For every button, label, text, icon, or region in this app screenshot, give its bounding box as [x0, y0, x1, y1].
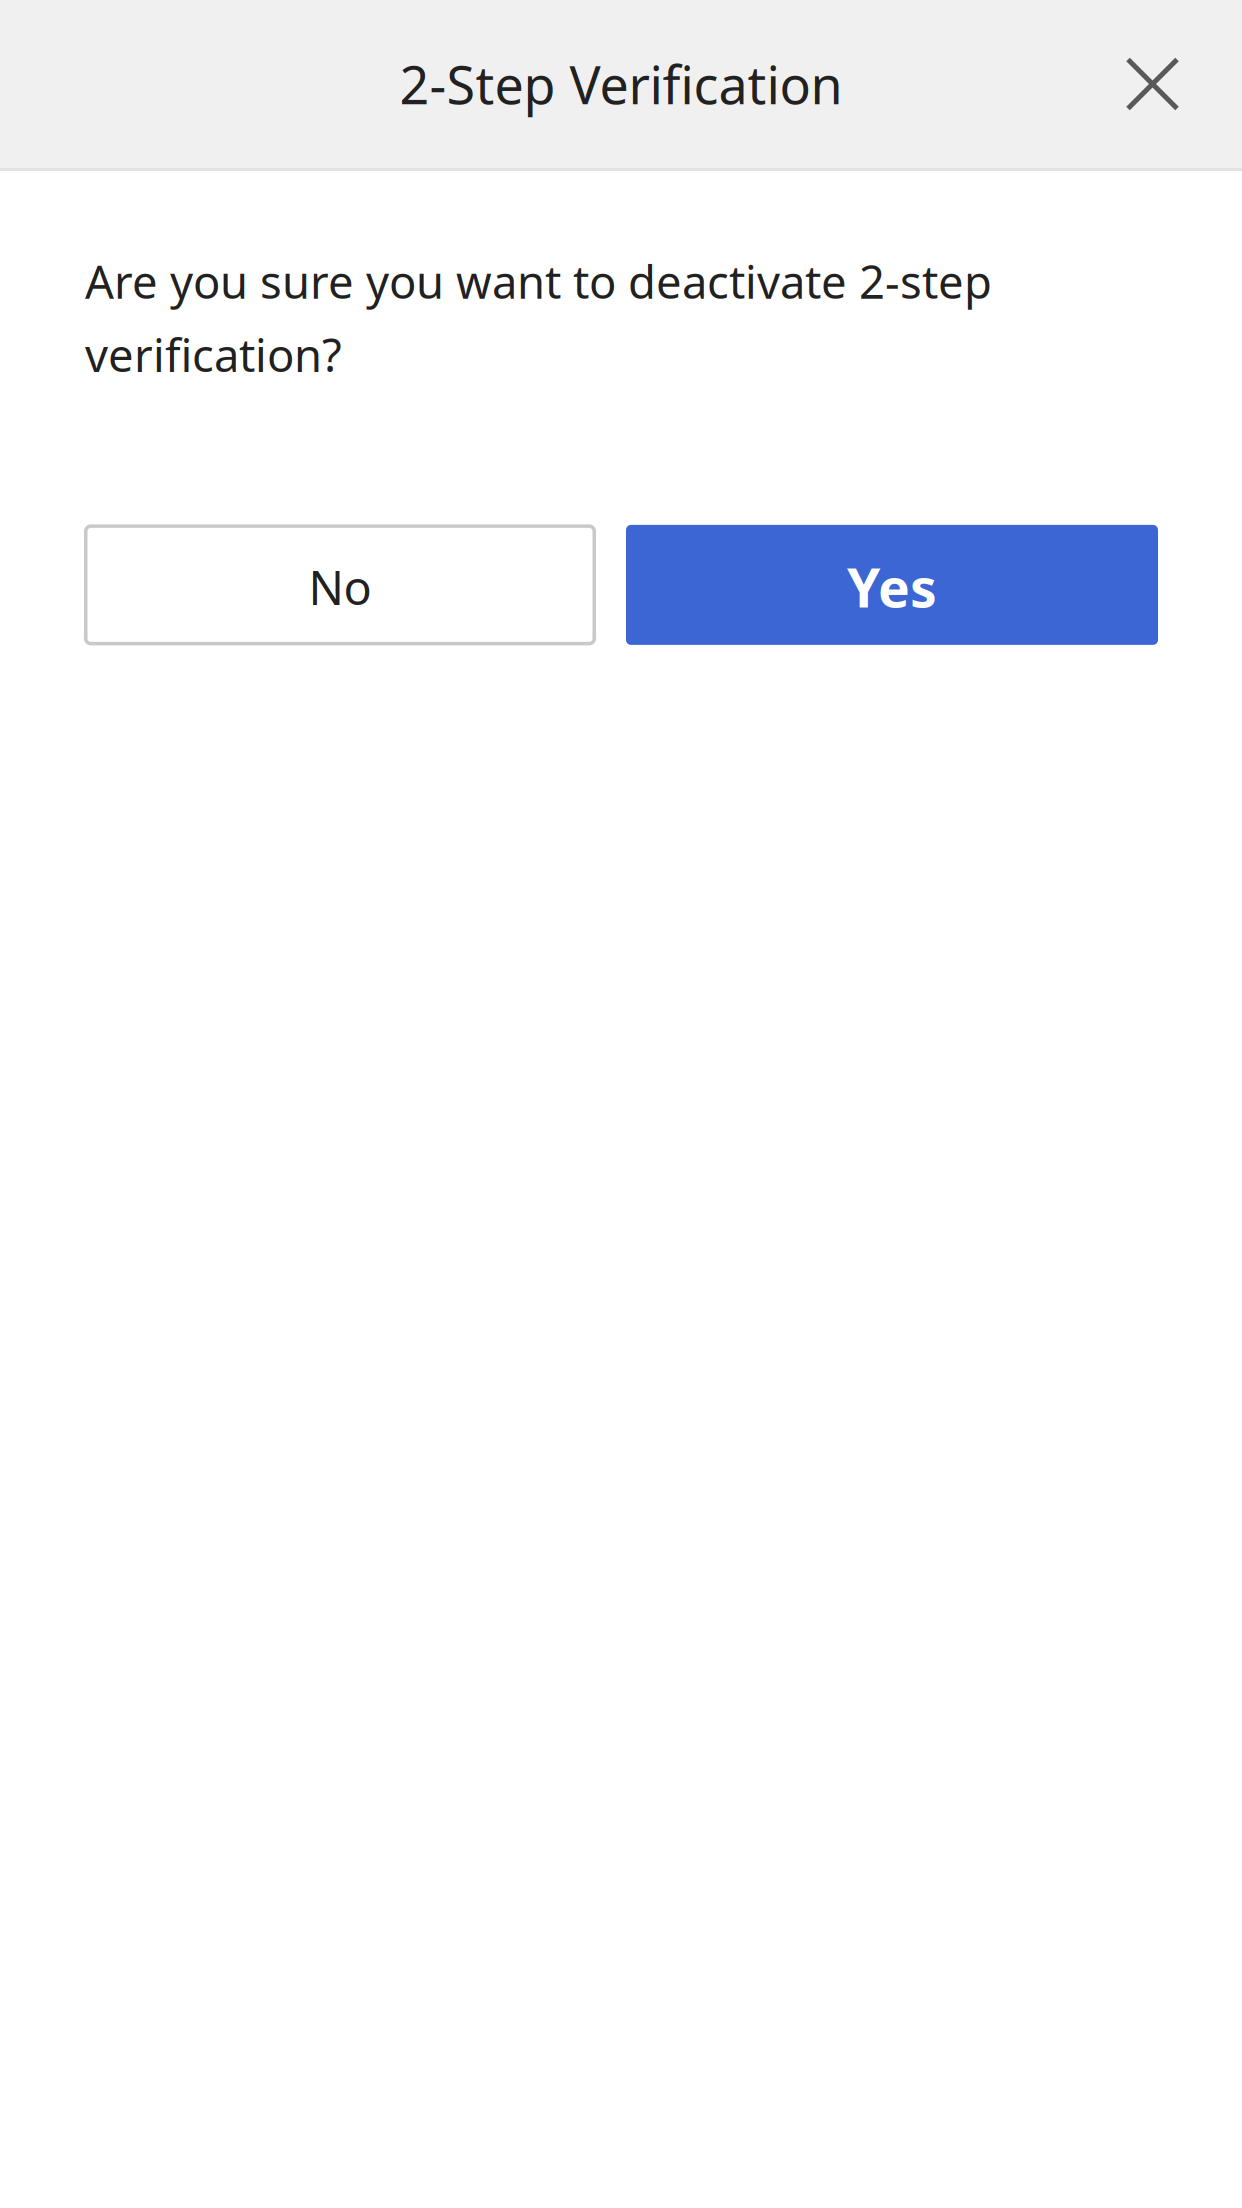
button[interactable]: Yes	[626, 525, 1158, 645]
button[interactable]: No	[84, 524, 596, 645]
staticText: 2-Step Verification	[399, 49, 842, 119]
staticText: No	[308, 556, 371, 618]
button[interactable]: Close	[1128, 0, 1242, 168]
staticText: Are you sure you want to deactivate 2-st…	[85, 251, 992, 384]
staticText: Yes	[847, 551, 937, 622]
